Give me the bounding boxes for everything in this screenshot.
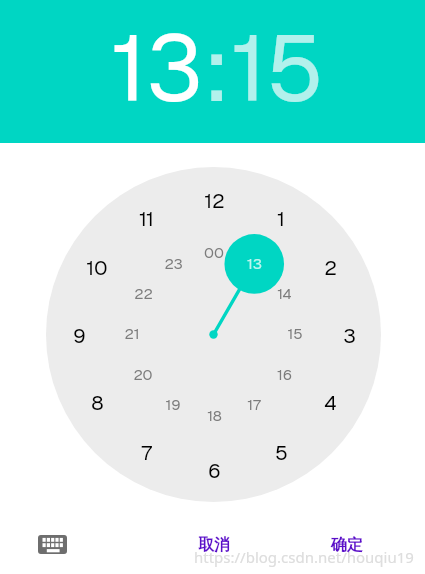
staticText: 18 [207,406,222,425]
staticText: 11 [139,205,154,232]
button[interactable]: 确定 [318,531,375,559]
staticText: 确定 [331,535,363,555]
staticText: 13 [247,254,262,273]
staticText: 1 [277,205,285,232]
staticText: 19 [165,395,181,414]
staticText: 15 [287,324,303,343]
staticText: 00 [204,243,224,262]
staticText: 8 [91,389,104,416]
staticText: 5 [275,439,288,466]
button[interactable]: 15 [231,9,324,129]
staticText: 17 [247,395,261,414]
staticText: : [203,9,231,129]
staticText: 2 [324,254,337,281]
staticText: 23 [164,254,183,273]
staticText: 9 [73,322,86,349]
button[interactable]: Switch to text input mode [34,526,70,562]
staticText: 21 [124,324,140,343]
staticText: 7 [141,439,152,466]
staticText: 10 [86,254,108,281]
button[interactable]: 取消 [185,531,242,559]
staticText: 3 [343,322,356,349]
button[interactable]: 13 [111,9,203,129]
staticText: 16 [277,365,292,384]
staticText: 12 [204,187,225,214]
staticText: 取消 [198,535,230,555]
staticText: 14 [277,284,292,303]
staticText: 20 [133,365,153,384]
staticText: 6 [208,457,221,484]
staticText: https://blog.csdn.net/houqiu19 [194,547,414,567]
staticText: 22 [134,284,153,303]
staticText: 4 [324,389,337,416]
